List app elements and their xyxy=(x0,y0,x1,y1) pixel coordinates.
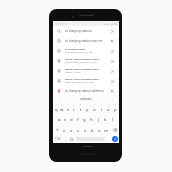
button[interactable]: ‹ xyxy=(53,95,66,102)
staticText: 4 xyxy=(73,103,75,106)
button[interactable]: 8 xyxy=(98,102,105,113)
button[interactable]: Electric Vehicle Charging Station xyxy=(53,76,119,86)
staticText: ev charging station near me xyxy=(65,39,103,43)
button[interactable]: h xyxy=(88,113,95,124)
button[interactable]: g xyxy=(81,113,88,124)
button[interactable]: 5 xyxy=(77,102,84,113)
staticText: Electric Vehicle Charging Station xyxy=(65,68,99,71)
staticText: p xyxy=(114,106,117,112)
staticText: 7 xyxy=(94,103,96,106)
button[interactable]: 3 xyxy=(65,102,71,113)
button[interactable]: 1 xyxy=(53,102,59,113)
staticText: 5 xyxy=(80,103,82,106)
staticText: r xyxy=(73,106,75,112)
button[interactable]: x xyxy=(68,124,75,135)
button[interactable]: a xyxy=(56,113,62,124)
staticText: Prospect Street, Palo Alto, CA 1001 xyxy=(65,61,98,64)
button[interactable]: j xyxy=(95,113,102,124)
button[interactable]: . xyxy=(105,135,110,143)
staticText: 1 xyxy=(56,103,58,106)
button[interactable]: ⋮ xyxy=(106,95,119,102)
staticText: i xyxy=(101,106,103,112)
button[interactable]: 7 xyxy=(91,102,98,113)
button[interactable]: b xyxy=(89,124,96,135)
button[interactable]: 6 xyxy=(84,102,91,113)
staticText: v xyxy=(84,127,87,133)
staticText: , xyxy=(65,137,66,142)
staticText: Willow Road, San Jose, CA 2034 xyxy=(65,81,95,84)
button[interactable]: , xyxy=(62,135,68,143)
staticText: u xyxy=(93,106,96,112)
staticText: q xyxy=(55,106,58,112)
staticText: n xyxy=(98,127,101,133)
staticText: 3 xyxy=(68,103,70,106)
button[interactable]: 4 xyxy=(71,102,77,113)
button[interactable]: stations xyxy=(66,95,106,102)
staticText: e xyxy=(67,106,70,112)
staticText: h xyxy=(90,116,93,122)
button[interactable]: n xyxy=(96,124,103,135)
staticText: 0 xyxy=(115,103,117,106)
staticText: y xyxy=(86,106,89,112)
staticText: ?123 xyxy=(55,137,61,141)
staticText: t xyxy=(80,106,82,112)
staticText: j xyxy=(98,116,100,122)
button[interactable]: l xyxy=(109,113,116,124)
button[interactable]: Remove xyxy=(110,79,115,84)
button[interactable]: ev charging station xyxy=(53,46,119,56)
button[interactable]: Backspace xyxy=(110,124,119,135)
staticText: 2 xyxy=(61,103,63,106)
button[interactable]: 9 xyxy=(105,102,112,113)
button[interactable]: c xyxy=(75,124,82,135)
staticText: m xyxy=(104,127,109,133)
staticText: New Park Cupertino, No. 456 xyxy=(65,51,93,54)
staticText: o xyxy=(107,106,110,112)
button[interactable]: Remove xyxy=(110,49,115,54)
staticText: stations xyxy=(80,97,92,101)
staticText: g xyxy=(83,116,86,122)
button[interactable]: Search xyxy=(112,136,118,142)
staticText: w xyxy=(60,106,64,112)
staticText: b xyxy=(91,127,94,133)
button[interactable]: f xyxy=(74,113,81,124)
staticText: 8 xyxy=(101,103,103,106)
staticText: ⋮ xyxy=(111,97,114,100)
staticText: Stewart, CA 2001 xyxy=(65,71,81,74)
staticText: k xyxy=(104,116,107,122)
staticText: d xyxy=(70,116,73,122)
button[interactable]: Electric Vehicle Charging Station xyxy=(53,56,119,66)
staticText: ‹ xyxy=(59,97,60,101)
button[interactable]: Shift xyxy=(53,124,61,135)
button[interactable]: d xyxy=(68,113,74,124)
button[interactable]: ev charging station near me xyxy=(53,36,119,46)
button[interactable]: v xyxy=(82,124,89,135)
staticText: c xyxy=(77,127,80,133)
button[interactable]: m xyxy=(103,124,110,135)
staticText: x xyxy=(70,127,73,133)
button[interactable]: Insert xyxy=(110,89,115,94)
staticText: l xyxy=(112,116,114,122)
staticText: f xyxy=(77,116,79,122)
staticText: 6 xyxy=(87,103,89,106)
staticText: z xyxy=(63,127,66,133)
staticText: Electric Vehicle Charging Station xyxy=(65,58,99,61)
button[interactable]: z xyxy=(61,124,68,135)
button[interactable]: 0 xyxy=(112,102,119,113)
button[interactable]: ev charging station california xyxy=(53,86,119,96)
button[interactable]: Insert xyxy=(110,39,115,44)
staticText: ev charging station xyxy=(65,48,86,51)
staticText: a xyxy=(58,116,61,122)
button[interactable]: ev charging stations xyxy=(53,26,119,36)
button[interactable]: Remove xyxy=(110,69,115,74)
staticText: . xyxy=(107,137,108,142)
button[interactable]: Emoji xyxy=(68,135,74,143)
button[interactable]: k xyxy=(102,113,109,124)
button[interactable]: Remove xyxy=(110,29,115,34)
button[interactable]: Electric Vehicle Charging Station xyxy=(53,66,119,76)
button[interactable]: ?123 xyxy=(53,135,62,143)
button[interactable]: Remove xyxy=(110,59,115,64)
staticText: s xyxy=(64,116,67,122)
button[interactable]: s xyxy=(62,113,68,124)
button[interactable]: 2 xyxy=(59,102,65,113)
